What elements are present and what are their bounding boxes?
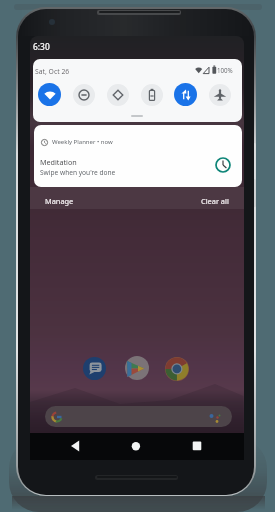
button[interactable] (83, 357, 106, 380)
button[interactable] (73, 84, 95, 106)
staticText: Meditation (40, 157, 77, 167)
button[interactable] (38, 83, 61, 106)
staticText: 100% (217, 66, 233, 74)
button[interactable] (187, 436, 207, 456)
button[interactable] (45, 406, 232, 427)
staticText: Weekly Planner • now (52, 138, 113, 146)
button[interactable] (34, 125, 242, 187)
button[interactable] (174, 83, 197, 106)
button[interactable]: Manage (45, 196, 74, 206)
button[interactable] (141, 84, 163, 106)
button[interactable] (65, 436, 85, 456)
button[interactable] (209, 84, 231, 106)
button[interactable] (125, 356, 149, 380)
button[interactable] (165, 357, 189, 381)
staticText: Swipe when you're done (40, 168, 116, 177)
staticText: Sat, Oct 26 (35, 67, 70, 76)
staticText: 6:30 (33, 41, 50, 52)
button[interactable]: Clear all (201, 196, 229, 206)
button[interactable] (126, 436, 146, 456)
button[interactable] (107, 84, 129, 106)
